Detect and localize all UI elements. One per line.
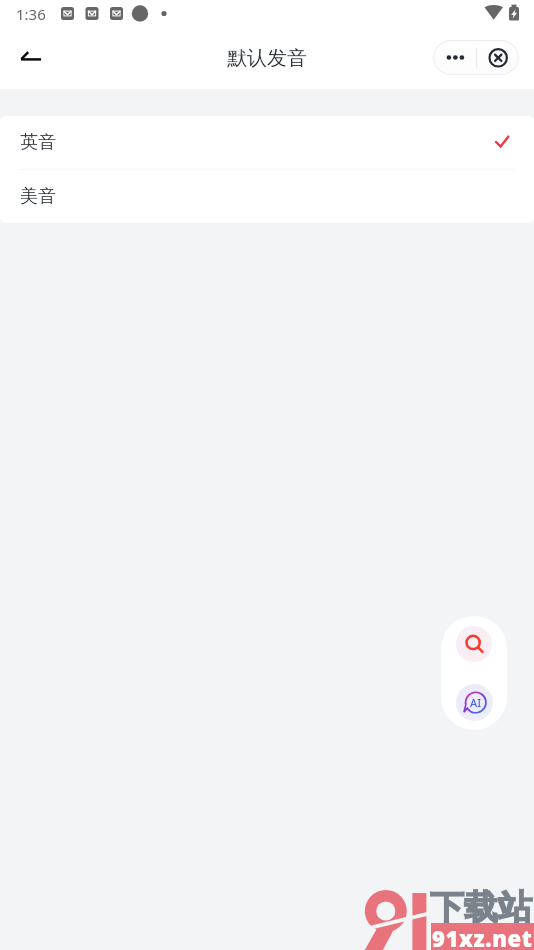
button[interactable]: 美音	[0, 170, 534, 223]
button[interactable]: More options	[433, 40, 477, 75]
staticText: 默认发音	[227, 46, 307, 71]
staticText: 91xz.net	[432, 923, 533, 950]
staticText: 1:36	[16, 4, 46, 24]
staticText: AI	[470, 695, 482, 710]
button[interactable]: AI assistant	[456, 684, 493, 721]
button[interactable]: Back	[7, 37, 51, 81]
staticText: 英音	[20, 131, 56, 154]
button[interactable]: Search	[456, 626, 492, 662]
staticText: 下载站	[430, 886, 532, 929]
button[interactable]: Close	[477, 40, 519, 75]
button[interactable]: 英音	[0, 116, 534, 169]
staticText: 美音	[20, 185, 56, 208]
